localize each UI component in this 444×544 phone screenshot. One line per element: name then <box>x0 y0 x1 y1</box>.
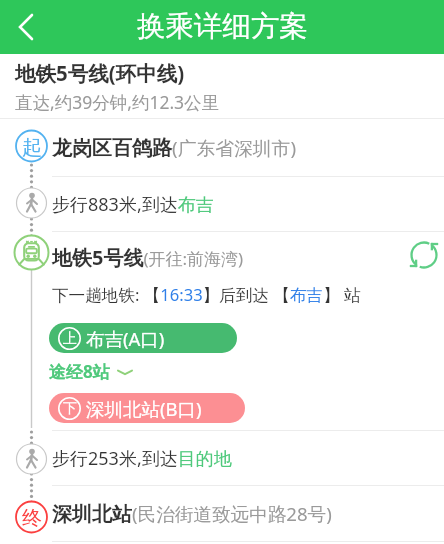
button[interactable]: Refresh <box>402 233 444 277</box>
staticText: 步行253米,到达目的地 <box>52 446 232 471</box>
staticText: 步行883米,到达布吉 <box>52 192 214 217</box>
staticText: 换乘详细方案 <box>137 9 308 45</box>
staticText: 地铁5号线(环中线) <box>15 59 185 87</box>
staticText: 深圳北站(民治街道致远中路28号) <box>52 501 332 527</box>
staticText: 下 <box>63 400 77 418</box>
button[interactable]: 步行883米,到达布吉 <box>0 177 444 231</box>
button[interactable]: 深圳北站(民治街道致远中路28号) <box>0 486 444 541</box>
staticText: 上 <box>63 330 77 348</box>
button[interactable]: 上 <box>49 323 237 353</box>
staticText: 龙岗区百鸽路(广东省深圳市) <box>52 135 297 161</box>
staticText: 深圳北站(B口) <box>86 396 202 421</box>
staticText: 起 <box>22 135 42 157</box>
staticText: 直达,约39分钟,约12.3公里 <box>15 90 220 114</box>
staticText: 途经8站 <box>49 360 110 383</box>
button[interactable]: 龙岗区百鸽路(广东省深圳市) <box>0 119 444 176</box>
button[interactable]: Back <box>0 0 54 54</box>
staticText: 终 <box>22 506 42 528</box>
staticText: 地铁5号线(开往:前海湾) <box>52 244 244 271</box>
button[interactable]: 下 <box>49 393 245 423</box>
staticText: 下一趟地铁: 【16:33】后到达 【布吉】 站 <box>52 283 361 306</box>
button[interactable]: 步行253米,到达目的地 <box>0 431 444 485</box>
staticText: 布吉(A口) <box>86 326 165 351</box>
button[interactable]: 途经8站 <box>49 360 134 383</box>
